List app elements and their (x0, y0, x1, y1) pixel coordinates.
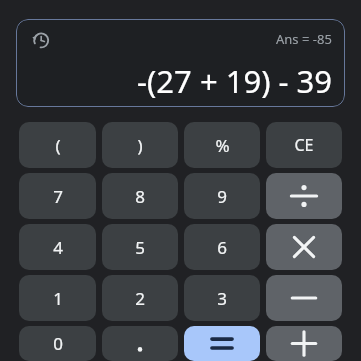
button[interactable]: 9 (184, 173, 260, 219)
staticText: ) (137, 134, 143, 157)
button[interactable]: Multiply (266, 224, 342, 270)
button[interactable]: Minus (266, 275, 342, 321)
button[interactable]: 7 (19, 173, 96, 219)
button[interactable]: Equals (184, 326, 260, 361)
staticText: 1 (53, 287, 63, 310)
staticText: 7 (53, 185, 63, 208)
staticText: 3 (217, 287, 227, 310)
button[interactable]: History (16, 19, 345, 107)
staticText: ( (55, 134, 61, 157)
button[interactable]: % (184, 122, 260, 168)
button[interactable]: Decimal point (102, 326, 178, 361)
button[interactable]: CE (266, 122, 342, 168)
staticText: Ans = -85 (276, 30, 332, 48)
button[interactable]: 3 (184, 275, 260, 321)
button[interactable]: History (27, 27, 53, 53)
staticText: 9 (217, 185, 227, 208)
staticText: 5 (135, 236, 145, 259)
button[interactable]: Plus (266, 326, 342, 361)
staticText: % (215, 134, 230, 157)
staticText: CE (294, 134, 314, 156)
staticText: 2 (135, 287, 145, 310)
button[interactable]: 8 (102, 173, 178, 219)
button[interactable]: 1 (19, 275, 96, 321)
staticText: 8 (135, 185, 145, 208)
staticText: -(27 + 19) - 39 (137, 60, 332, 102)
staticText: 4 (53, 236, 63, 259)
button[interactable]: 0 (19, 326, 96, 361)
button[interactable]: 4 (19, 224, 96, 270)
button[interactable]: ( (19, 122, 96, 168)
staticText: 0 (53, 332, 63, 355)
staticText: 6 (217, 236, 227, 259)
button[interactable]: ) (102, 122, 178, 168)
button[interactable]: 6 (184, 224, 260, 270)
button[interactable]: Divide (266, 173, 342, 219)
button[interactable]: 2 (102, 275, 178, 321)
button[interactable]: 5 (102, 224, 178, 270)
